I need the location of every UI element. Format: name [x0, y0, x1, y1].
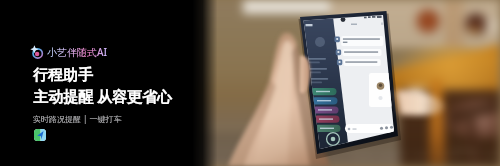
button[interactable]: 小艺伴随式AI: [29, 44, 108, 59]
staticText: 主动提醒 从容更省心: [33, 86, 172, 106]
button[interactable]: Navigation app: [34, 129, 46, 141]
staticText: 实时路况提醒 | 一键打车: [33, 113, 122, 124]
staticText: 小艺伴随式AI: [47, 45, 108, 59]
staticText: 行程助手: [33, 66, 93, 85]
